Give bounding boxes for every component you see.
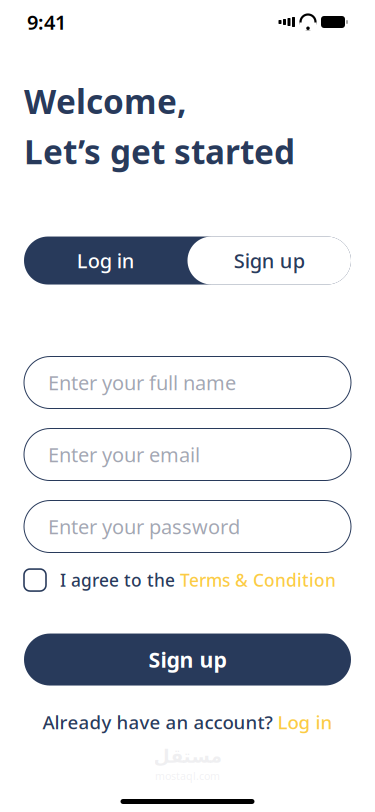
button[interactable]: Log in [277,709,332,734]
button[interactable]: Enter your password [24,500,351,552]
staticText: 9:41 [27,9,66,35]
button[interactable]: Sign up [187,236,351,284]
button[interactable]: Enter your email [24,428,351,480]
button[interactable]: Log in [24,236,187,284]
staticText: Enter your password [48,513,240,540]
button[interactable]: Terms & Condition [180,568,336,591]
staticText: Log in [277,709,332,734]
staticText: Enter your full name [48,369,236,396]
staticText: mostaql.com [155,769,220,783]
staticText: مستقل [153,746,222,767]
staticText: Enter your email [48,441,200,468]
staticText: Let’s get started [24,129,295,174]
staticText: Welcome, [24,79,187,123]
button[interactable]: Enter your full name [24,356,351,408]
staticText: I agree to the [60,568,180,591]
button[interactable]: I agree to the Terms and Conditions [24,569,46,591]
button[interactable]: Sign up [24,633,351,685]
staticText: Sign up [234,247,305,274]
staticText: Sign up [148,645,226,674]
staticText: Terms & Condition [180,568,336,591]
staticText: Already have an account? [42,709,277,734]
staticText: Log in [77,247,135,274]
